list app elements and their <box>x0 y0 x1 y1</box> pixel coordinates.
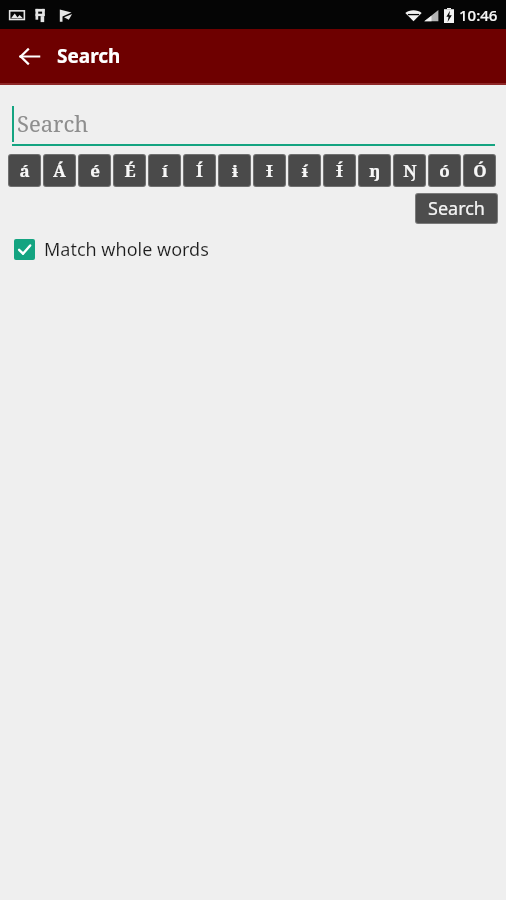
button[interactable]: Ɨ́ <box>324 155 355 186</box>
staticText: 10:46 <box>459 5 498 25</box>
staticText: Ŋ <box>403 159 417 182</box>
staticText: Ɨ <box>266 159 273 182</box>
button[interactable]: Ɨ <box>254 155 285 186</box>
button[interactable]: ŋ <box>359 155 390 186</box>
staticText: ɨ <box>232 159 238 182</box>
button[interactable]: Á <box>44 155 75 186</box>
staticText: ŋ <box>369 159 381 182</box>
button[interactable]: é <box>79 155 110 186</box>
staticText: Á <box>53 159 66 182</box>
button[interactable]: É <box>114 155 145 186</box>
staticText: ó <box>439 159 450 182</box>
staticText: é <box>90 159 100 182</box>
button[interactable]: ɨ́ <box>289 155 320 186</box>
button[interactable]: Ŋ <box>394 155 425 186</box>
staticText: Ɨ́ <box>336 159 343 182</box>
staticText: í <box>162 159 168 182</box>
button[interactable]: Match whole words <box>14 237 209 262</box>
staticText: Match whole words <box>44 237 209 262</box>
button[interactable]: á <box>9 155 40 186</box>
staticText: Ó <box>473 159 487 182</box>
staticText: á <box>19 159 30 182</box>
staticText: Search <box>17 108 89 138</box>
button[interactable]: Back <box>8 35 50 77</box>
staticText: Search <box>428 196 485 221</box>
button[interactable]: ɨ <box>219 155 250 186</box>
staticText: ɨ́ <box>302 159 308 182</box>
button[interactable]: Search <box>416 194 497 223</box>
button[interactable]: Ó <box>464 155 495 186</box>
staticText: Search <box>57 43 121 69</box>
staticText: Í <box>196 159 203 182</box>
staticText: É <box>124 159 136 182</box>
button[interactable]: ó <box>429 155 460 186</box>
button[interactable]: í <box>149 155 180 186</box>
button[interactable]: Í <box>184 155 215 186</box>
